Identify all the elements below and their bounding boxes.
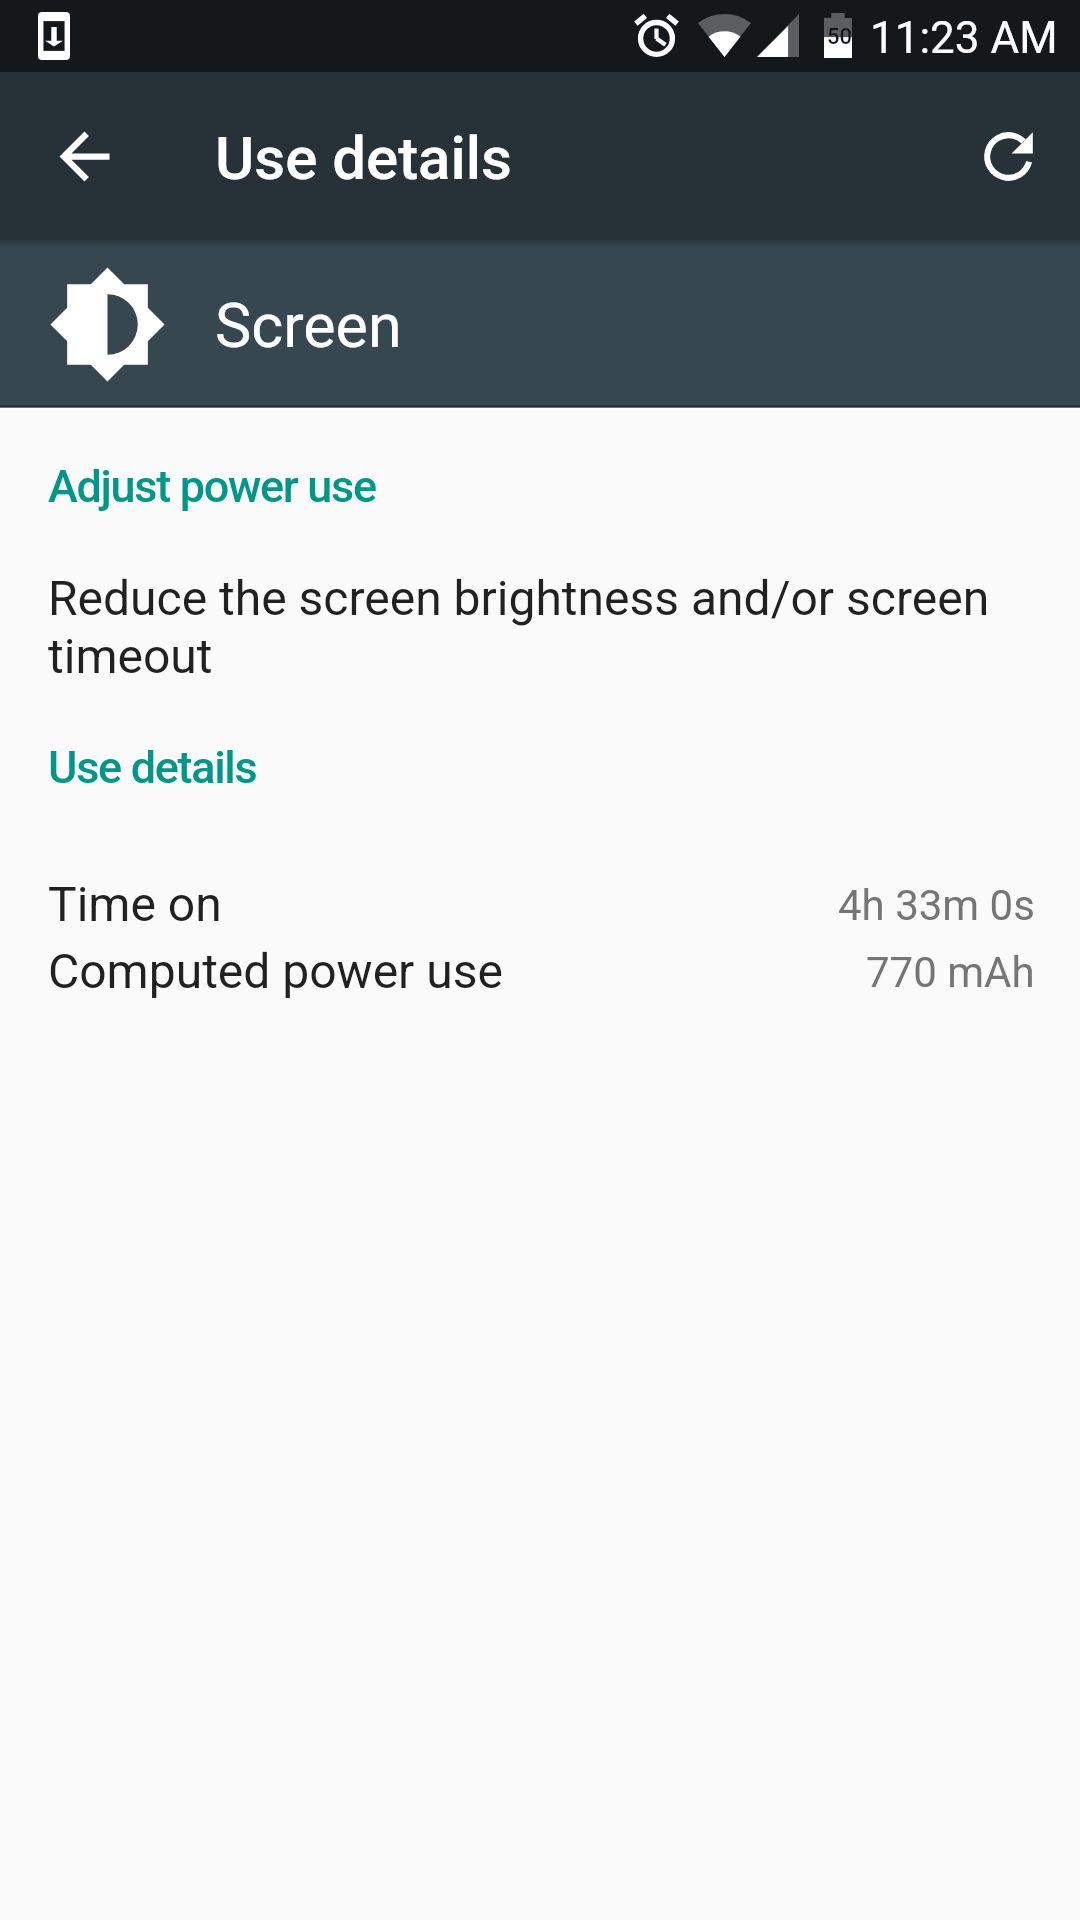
staticText: 770 mAh xyxy=(866,948,1035,997)
button[interactable]: Back xyxy=(36,108,132,204)
staticText: Screen xyxy=(215,290,402,361)
staticText: 4h 33m 0s xyxy=(838,881,1035,930)
staticText: Use details xyxy=(215,123,512,193)
staticText: Computed power use xyxy=(48,943,866,999)
staticText: Time on xyxy=(48,876,838,932)
staticText: 50 xyxy=(827,24,853,50)
staticText: Use details xyxy=(48,741,257,794)
staticText: Adjust power use xyxy=(48,460,376,513)
staticText: 11:23 AM xyxy=(870,12,1058,64)
staticText: Reduce the screen brightness and/or scre… xyxy=(48,570,1018,685)
button[interactable]: Refresh xyxy=(960,108,1056,204)
